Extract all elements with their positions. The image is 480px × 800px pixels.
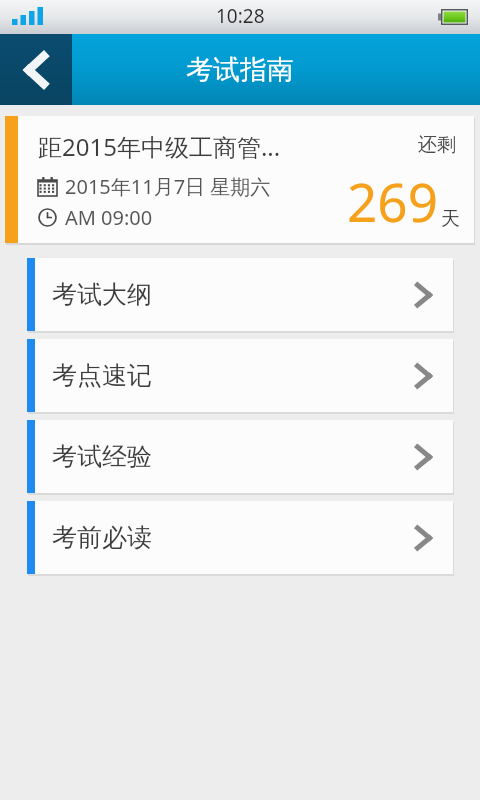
staticText: 天 — [441, 207, 460, 231]
staticText: AM 09:00 — [65, 204, 153, 231]
staticText: 还剩 — [418, 133, 456, 157]
staticText: 10:28 — [216, 3, 265, 29]
button[interactable]: 考前必读 — [27, 501, 453, 574]
staticText: 考试大纲 — [52, 279, 152, 310]
button[interactable]: 考点速记 — [27, 339, 453, 412]
staticText: 考试指南 — [186, 53, 294, 87]
button[interactable]: 考试大纲 — [27, 258, 453, 331]
staticText: 269 — [347, 165, 438, 237]
button[interactable]: 考试经验 — [27, 420, 453, 493]
button[interactable]: 距2015年中级工商管... — [5, 116, 474, 243]
staticText: 2015年11月7日 星期六 — [65, 173, 271, 200]
staticText: 考试经验 — [52, 441, 152, 472]
staticText: 考前必读 — [52, 522, 152, 553]
staticText: 距2015年中级工商管... — [38, 130, 281, 163]
button[interactable]: Back — [0, 34, 72, 105]
staticText: 考点速记 — [52, 360, 152, 391]
